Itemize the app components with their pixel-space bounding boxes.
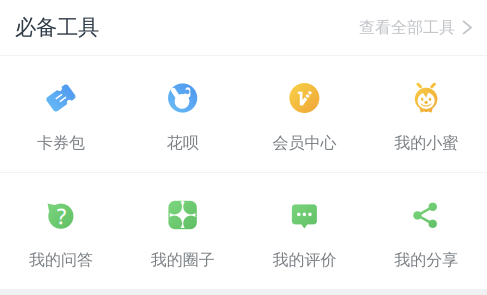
button[interactable]: 花呗 xyxy=(122,56,244,172)
button[interactable]: 我的圈子 xyxy=(122,173,244,289)
staticText: 会员中心 xyxy=(272,133,336,153)
staticText: 必备工具 xyxy=(15,14,99,41)
staticText: 我的圈子 xyxy=(151,250,215,270)
staticText: 花呗 xyxy=(167,133,199,153)
staticText: 我的评价 xyxy=(272,250,336,270)
button[interactable]: 卡券包 xyxy=(0,56,122,172)
button[interactable]: 我的小蜜 xyxy=(365,56,487,172)
button[interactable]: 查看全部工具 xyxy=(359,18,472,37)
button[interactable]: ? xyxy=(0,173,122,289)
staticText: 查看全部工具 xyxy=(359,18,455,37)
staticText: 我的问答 xyxy=(29,250,93,270)
staticText: 我的小蜜 xyxy=(394,133,458,153)
button[interactable]: 我的分享 xyxy=(365,173,487,289)
button[interactable]: 我的评价 xyxy=(243,173,365,289)
button[interactable]: 会员中心 xyxy=(243,56,365,172)
staticText: ? xyxy=(57,202,67,230)
staticText: 卡券包 xyxy=(37,133,85,153)
staticText: 我的分享 xyxy=(394,250,458,270)
